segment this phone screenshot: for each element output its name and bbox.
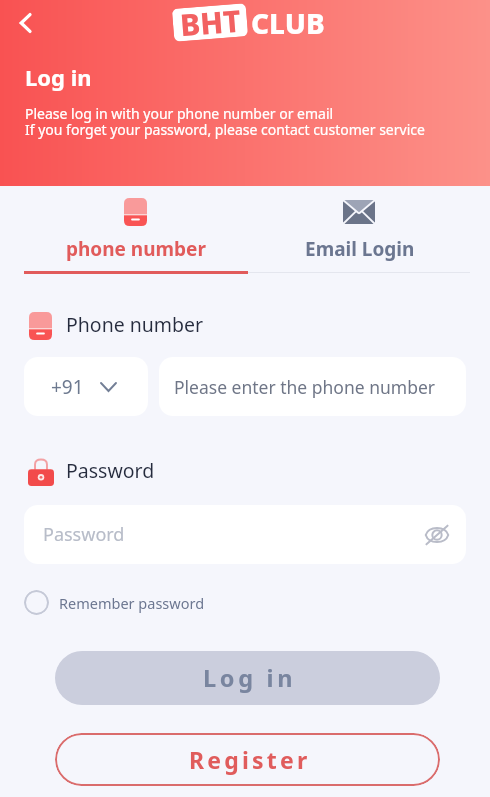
button[interactable]: Back: [8, 5, 44, 41]
staticText: +91: [51, 374, 84, 400]
staticText: Please log in with your phone number or …: [25, 104, 334, 123]
staticText: Log in: [25, 62, 92, 92]
staticText: Password: [43, 522, 422, 547]
staticText: Phone number: [66, 311, 204, 338]
staticText: If you forget your password, please cont…: [25, 120, 425, 139]
button[interactable]: Log in: [55, 651, 440, 705]
button[interactable]: Please enter the phone number: [159, 357, 466, 416]
staticText: Please enter the phone number: [174, 375, 436, 399]
staticText: Password: [66, 457, 155, 484]
button[interactable]: Show password: [422, 520, 452, 550]
button[interactable]: [248, 190, 472, 274]
staticText: phone number: [66, 236, 206, 262]
button[interactable]: Password: [24, 505, 466, 564]
button[interactable]: +91: [24, 357, 148, 416]
button[interactable]: Register: [55, 733, 440, 786]
staticText: Register: [189, 744, 311, 775]
button[interactable]: Remember password: [24, 590, 205, 615]
staticText: CLUB: [251, 4, 325, 42]
staticText: Log in: [203, 662, 297, 694]
staticText: BHT: [178, 0, 242, 45]
button[interactable]: [24, 190, 248, 274]
staticText: Remember password: [59, 593, 205, 613]
staticText: Email Login: [305, 236, 415, 262]
